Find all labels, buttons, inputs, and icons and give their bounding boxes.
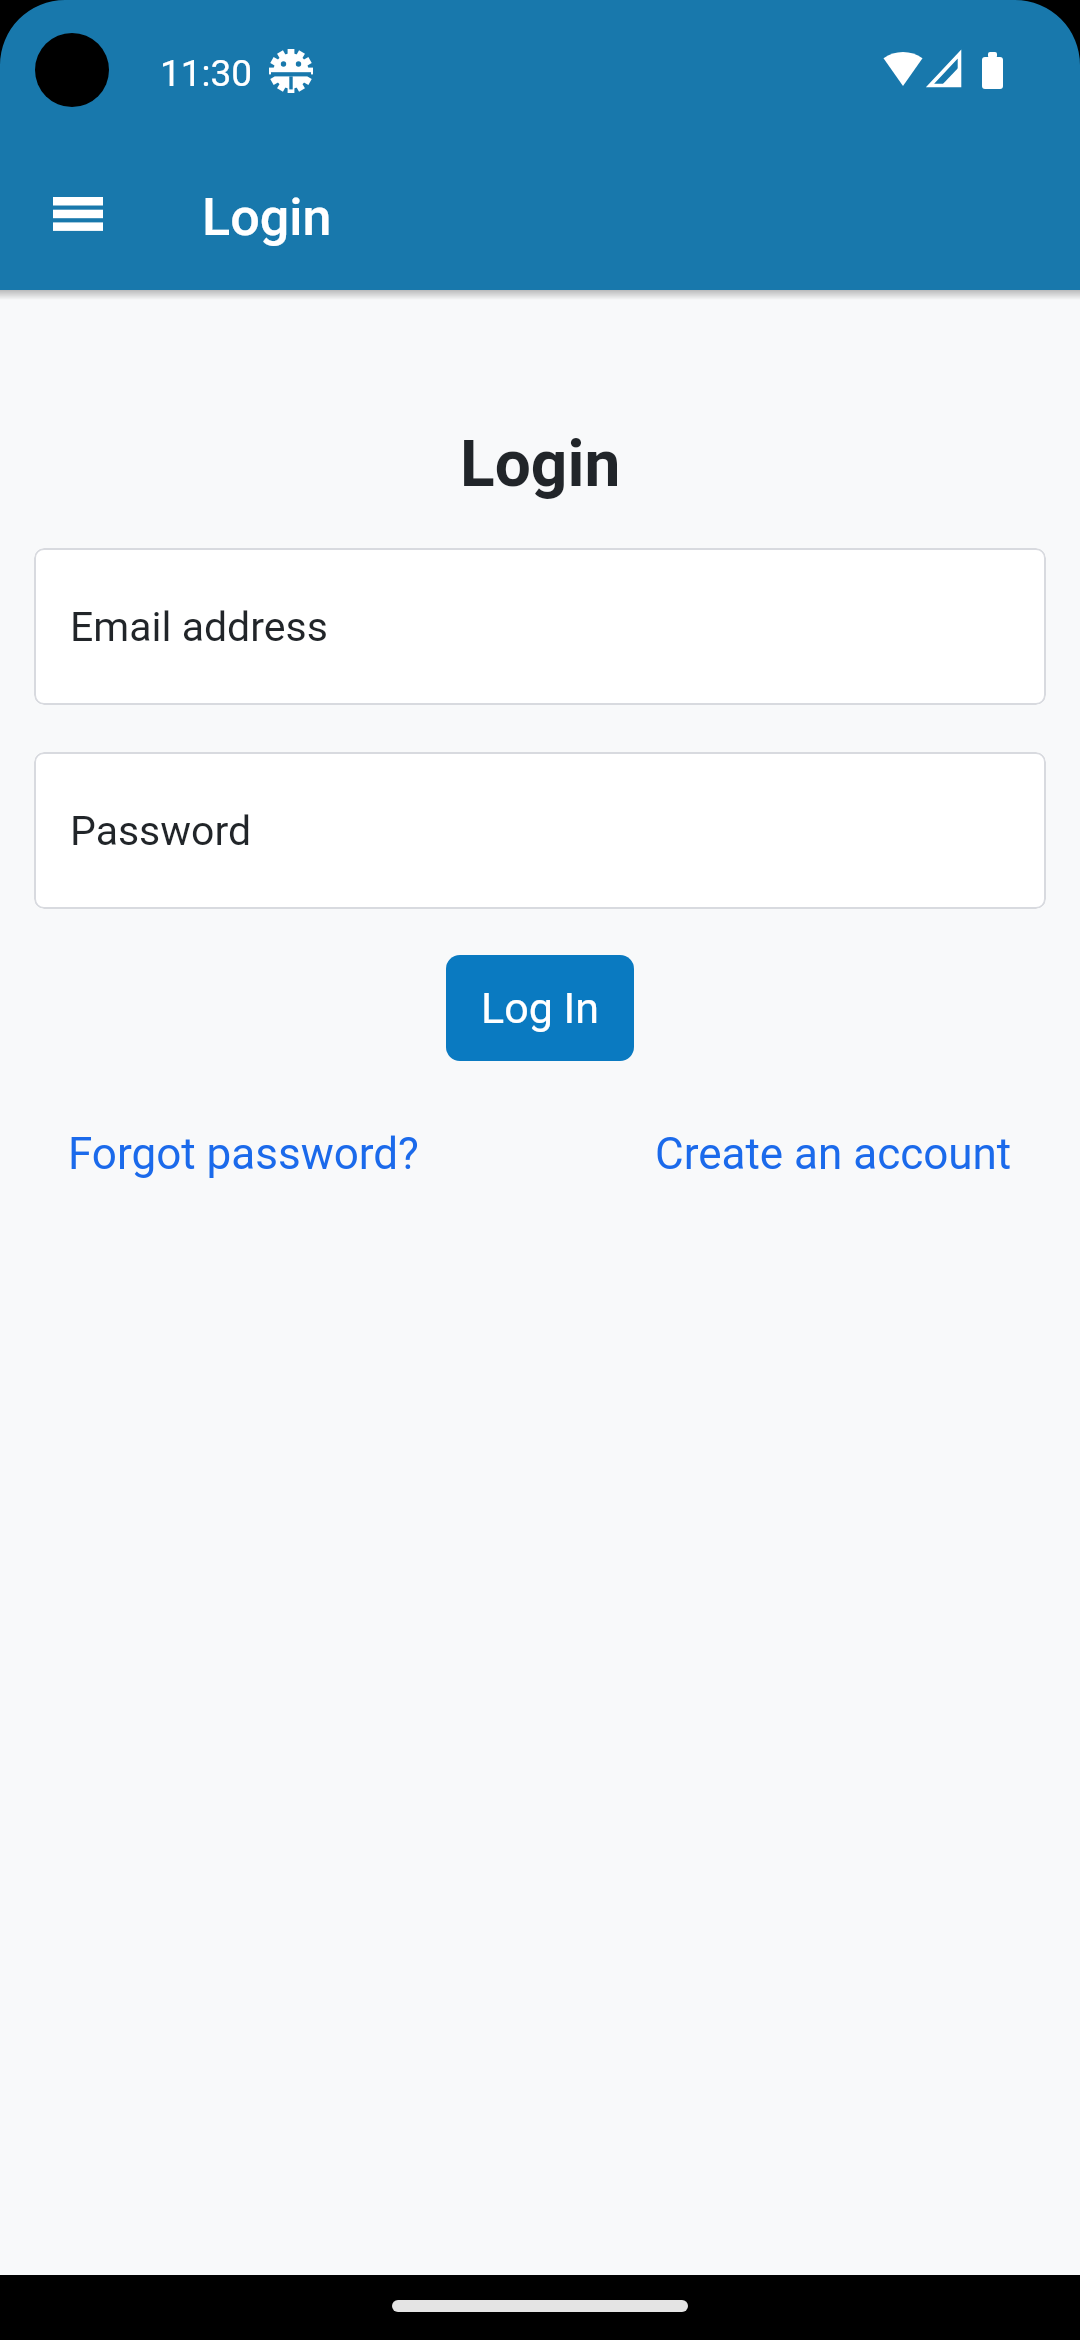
button[interactable]: Log In <box>446 955 634 1061</box>
staticText: Log In <box>481 983 599 1033</box>
staticText: Login <box>202 187 332 248</box>
button[interactable] <box>30 166 126 262</box>
staticText: Login <box>460 427 621 502</box>
button[interactable]: Password <box>34 752 1046 909</box>
staticText: Email address <box>70 603 328 651</box>
staticText: 11:30 <box>160 52 253 95</box>
button[interactable]: Email address <box>34 548 1046 705</box>
button[interactable]: Forgot password? <box>68 1128 419 1180</box>
staticText: Password <box>70 807 252 855</box>
button[interactable]: Create an account <box>655 1128 1012 1180</box>
